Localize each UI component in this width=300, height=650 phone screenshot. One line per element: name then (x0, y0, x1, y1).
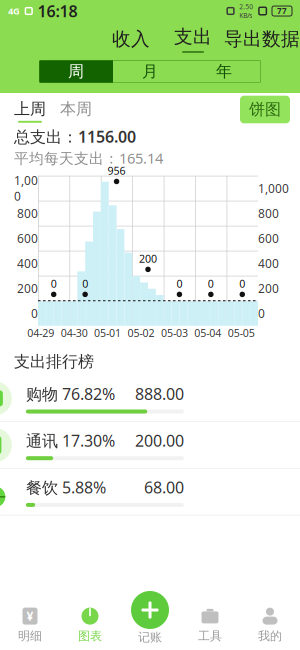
staticText: 04-29 (27, 326, 54, 340)
staticText: 周 (68, 62, 84, 81)
staticText: 饼图 (249, 100, 281, 119)
button[interactable]: 上周 (14, 99, 46, 123)
staticText: 支出 (174, 25, 212, 48)
staticText: 收入 (112, 27, 150, 50)
button[interactable]: 饼图 (240, 96, 290, 123)
staticText: 明细 (18, 629, 42, 643)
staticText: 0 (31, 305, 38, 321)
button[interactable]: 购物 76.82% (0, 375, 300, 422)
staticText: 200 (17, 280, 38, 296)
button[interactable]: ¥ (0, 600, 60, 650)
staticText: 956 (108, 164, 126, 178)
button[interactable]: 本周 (46, 99, 92, 123)
staticText: 400 (17, 255, 38, 271)
staticText: 导出数据 (224, 27, 300, 50)
staticText: 购物 76.82% (26, 383, 115, 404)
staticText: 总支出：1156.00 (14, 126, 136, 147)
staticText: 400 (258, 255, 279, 271)
button[interactable]: 图表 (60, 600, 120, 650)
staticText: 记账 (138, 630, 162, 645)
staticText: 0 (258, 305, 265, 321)
staticText: 200.00 (135, 430, 184, 451)
staticText: 05-04 (194, 326, 221, 340)
button[interactable]: 工具 (180, 600, 240, 650)
staticText: 4G (8, 5, 20, 17)
staticText: 0 (51, 276, 57, 291)
staticText: 800 (258, 205, 279, 221)
staticText: 05-03 (161, 326, 188, 340)
staticText: 600 (17, 230, 38, 246)
staticText: 本周 (60, 99, 92, 119)
staticText: 800 (17, 205, 38, 221)
staticText: 0 (82, 276, 88, 291)
staticText: 68.00 (144, 477, 184, 498)
staticText: 工具 (198, 629, 222, 643)
staticText: 年 (216, 62, 232, 81)
staticText: ¥ (26, 608, 33, 624)
button[interactable]: 餐饮 5.88% (0, 469, 300, 515)
button[interactable]: 收入 (100, 22, 162, 56)
staticText: 04-30 (61, 326, 88, 340)
button[interactable]: 通讯 17.30% (0, 422, 300, 469)
button[interactable]: 支出 (162, 22, 224, 56)
button[interactable]: 记账 (120, 600, 180, 645)
staticText: 餐饮 5.88% (26, 477, 106, 498)
staticText: 月 (142, 62, 158, 81)
staticText: 0 (239, 276, 245, 291)
staticText: 2.50 KB/s (239, 2, 253, 20)
staticText: 我的 (258, 629, 282, 643)
staticText: 0 (208, 276, 214, 291)
staticText: 1,000 (14, 172, 38, 204)
staticText: 888.00 (135, 383, 184, 404)
staticText: 16:18 (37, 0, 77, 22)
staticText: 05-05 (228, 326, 255, 340)
staticText: 600 (258, 230, 279, 246)
staticText: 图表 (78, 629, 102, 643)
staticText: 05-01 (94, 326, 121, 340)
button[interactable]: 周 (39, 60, 113, 83)
staticText: 支出排行榜 (14, 352, 94, 371)
staticText: 0 (176, 276, 182, 291)
button[interactable]: 月 (113, 60, 187, 83)
staticText: 200 (258, 280, 279, 296)
button[interactable]: 年 (187, 60, 261, 83)
staticText: 上周 (14, 99, 46, 119)
button[interactable]: 导出数据 (224, 22, 300, 56)
staticText: 1,000 (258, 180, 289, 196)
staticText: 平均每天支出：165.14 (14, 148, 163, 168)
staticText: 通讯 17.30% (26, 430, 115, 451)
button[interactable]: 我的 (240, 600, 300, 650)
staticText: 77 (277, 6, 287, 16)
staticText: 05-02 (127, 326, 154, 340)
staticText: 200 (139, 251, 157, 266)
